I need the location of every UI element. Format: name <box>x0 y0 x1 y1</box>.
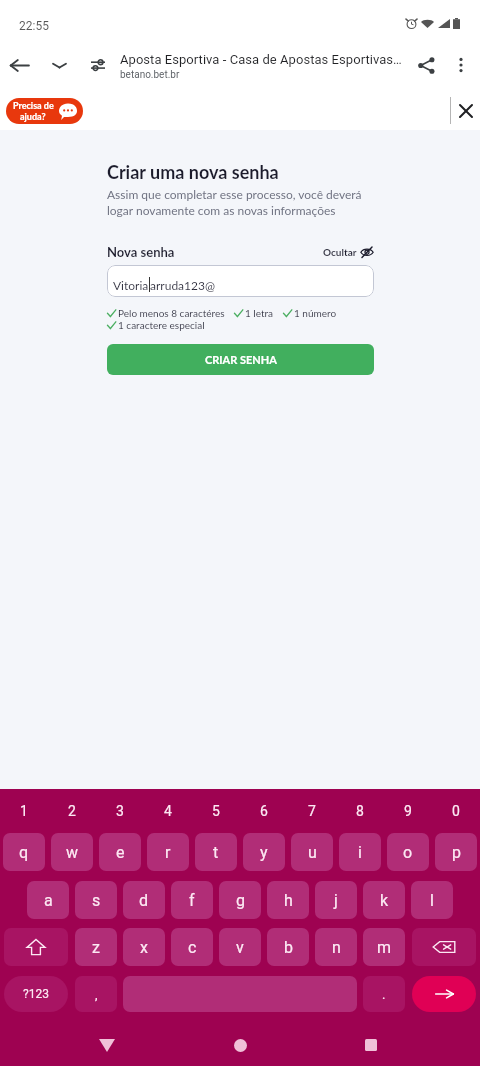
staticText: 7 <box>308 803 316 819</box>
button[interactable]: a <box>27 881 69 919</box>
staticText: 3 <box>116 803 124 819</box>
button[interactable]: z <box>75 928 117 966</box>
button[interactable]: 8 <box>336 789 384 833</box>
staticText: Aposta Esportiva - Casa de Apostas Espor… <box>120 52 405 67</box>
staticText: p <box>452 843 461 862</box>
staticText: b <box>284 938 293 957</box>
button[interactable]: Ocultar <box>323 246 374 258</box>
staticText: k <box>380 891 389 910</box>
staticText: r <box>165 843 171 862</box>
button[interactable]: 0 <box>432 789 480 833</box>
button[interactable]: w <box>51 833 93 871</box>
staticText: h <box>284 891 293 910</box>
button[interactable]: q <box>3 833 45 871</box>
staticText: d <box>139 891 149 910</box>
staticText: s <box>92 891 101 910</box>
button[interactable]: Precisa de <box>6 98 83 124</box>
staticText: Criar uma nova senha <box>107 161 279 183</box>
staticText: 22:55 <box>19 19 49 33</box>
staticText: 1 letra <box>245 307 274 319</box>
staticText: . <box>382 987 386 1002</box>
button[interactable]: Expand <box>35 41 83 89</box>
staticText: x <box>140 938 148 957</box>
button[interactable]: 4 <box>144 789 192 833</box>
button[interactable]: 3 <box>96 789 144 833</box>
button[interactable]: 1 <box>0 789 48 833</box>
button[interactable]: o <box>387 833 429 871</box>
staticText: z <box>92 938 100 957</box>
staticText: f <box>189 891 195 910</box>
button[interactable]: 9 <box>384 789 432 833</box>
button[interactable]: 7 <box>288 789 336 833</box>
staticText: Pelo menos 8 caractéres <box>118 307 225 319</box>
button[interactable]: v <box>219 928 261 966</box>
staticText: t <box>213 843 219 862</box>
button[interactable]: Share <box>402 41 450 89</box>
staticText: 0 <box>452 803 460 819</box>
button[interactable]: Site settings <box>74 41 122 89</box>
button[interactable]: . <box>363 976 405 1012</box>
staticText: 4 <box>164 803 172 819</box>
staticText: u <box>308 843 317 862</box>
staticText: m <box>377 938 392 957</box>
button[interactable]: u <box>291 833 333 871</box>
button[interactable]: Back <box>0 41 43 89</box>
button[interactable]: More options <box>437 41 480 89</box>
button[interactable]: y <box>243 833 285 871</box>
staticText: 1 caractere especial <box>118 319 205 331</box>
button[interactable]: , <box>75 976 117 1012</box>
staticText: j <box>334 891 338 910</box>
staticText: y <box>260 843 268 862</box>
staticText: c <box>188 938 197 957</box>
staticText: 5 <box>212 803 220 819</box>
staticText: , <box>95 987 98 1002</box>
button[interactable]: g <box>219 881 261 919</box>
button[interactable]: 6 <box>240 789 288 833</box>
button[interactable]: r <box>147 833 189 871</box>
staticText: Assim que completar esse processo, você … <box>107 187 382 218</box>
button[interactable]: m <box>363 928 405 966</box>
button[interactable]: d <box>123 881 165 919</box>
button[interactable]: l <box>411 881 453 919</box>
button[interactable]: c <box>171 928 213 966</box>
staticText: 1 número <box>294 307 337 319</box>
staticText: e <box>116 843 125 862</box>
staticText: n <box>332 938 341 957</box>
button[interactable]: s <box>75 881 117 919</box>
staticText: w <box>66 843 79 862</box>
button[interactable]: e <box>99 833 141 871</box>
staticText: i <box>358 843 362 862</box>
button[interactable]: n <box>315 928 357 966</box>
button[interactable]: t <box>195 833 237 871</box>
button[interactable]: CRIAR SENHA <box>107 344 374 375</box>
button[interactable]: Back <box>83 1024 131 1066</box>
staticText: 9 <box>404 803 412 819</box>
button[interactable]: i <box>339 833 381 871</box>
button[interactable]: f <box>171 881 213 919</box>
button[interactable]: Home <box>216 1024 264 1066</box>
button[interactable]: x <box>123 928 165 966</box>
staticText: v <box>236 938 244 957</box>
button[interactable]: p <box>435 833 477 871</box>
staticText: Nova senha <box>107 244 175 260</box>
staticText: o <box>403 843 413 862</box>
staticText: Vitoria <box>113 278 149 292</box>
button[interactable]: Close <box>442 91 480 130</box>
button[interactable]: 2 <box>48 789 96 833</box>
button[interactable]: Shift <box>4 928 68 966</box>
button[interactable]: h <box>267 881 309 919</box>
staticText: q <box>19 843 29 862</box>
button[interactable]: Backspace <box>412 928 476 966</box>
button[interactable]: j <box>315 881 357 919</box>
button[interactable]: Enter <box>412 976 476 1012</box>
button[interactable]: Recents <box>347 1024 395 1066</box>
staticText: l <box>430 891 434 910</box>
button[interactable]: b <box>267 928 309 966</box>
button[interactable]: Vitoria <box>107 265 374 297</box>
button[interactable]: ?123 <box>4 976 68 1012</box>
button[interactable]: k <box>363 881 405 919</box>
staticText: Ocultar <box>323 246 357 258</box>
staticText: 6 <box>260 803 268 819</box>
button[interactable]: 5 <box>192 789 240 833</box>
